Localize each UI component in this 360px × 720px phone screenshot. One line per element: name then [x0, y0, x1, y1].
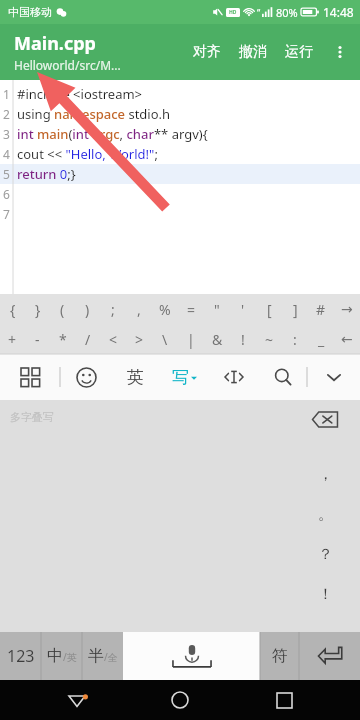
button[interactable]: More options: [322, 34, 358, 70]
button[interactable]: (: [50, 294, 75, 324]
button[interactable]: =: [178, 294, 204, 324]
staticText: 英: [127, 367, 144, 388]
button[interactable]: Recent apps: [257, 680, 311, 720]
staticText: 多字叠写: [10, 410, 54, 424]
button[interactable]: ，: [308, 454, 342, 494]
button[interactable]: ": [204, 294, 230, 324]
staticText: cout << "Hello, World!";: [17, 145, 158, 163]
staticText: 123: [7, 645, 35, 667]
button[interactable]: 符: [261, 632, 299, 680]
button[interactable]: 英: [111, 354, 160, 400]
button[interactable]: Home: [153, 680, 207, 720]
button[interactable]: Hide keyboard: [308, 354, 360, 400]
button[interactable]: Move cursor: [209, 354, 258, 400]
button[interactable]: _: [308, 324, 334, 354]
staticText: return 0;}: [17, 165, 76, 183]
button[interactable]: >: [126, 324, 152, 354]
staticText: 撤消: [239, 43, 267, 61]
staticText: &: [212, 330, 223, 349]
staticText: 7: [3, 206, 10, 222]
button[interactable]: 写: [160, 354, 209, 400]
staticText: #: [316, 300, 326, 319]
button[interactable]: |: [178, 324, 204, 354]
staticText: 5: [3, 166, 10, 182]
button[interactable]: /: [75, 324, 100, 354]
staticText: 半/全: [88, 646, 118, 666]
staticText: 2: [3, 106, 10, 122]
button[interactable]: 。: [308, 494, 342, 534]
staticText: using namespace stdio.h: [17, 105, 171, 123]
button[interactable]: 中/英: [42, 632, 82, 680]
staticText: ": [214, 300, 220, 319]
button[interactable]: %: [152, 294, 178, 324]
staticText: +: [8, 330, 17, 349]
button[interactable]: ？: [308, 534, 342, 574]
staticText: ←: [341, 331, 353, 347]
button[interactable]: 半/全: [83, 632, 123, 680]
staticText: #include <iostream>: [17, 85, 143, 103]
staticText: 中国移动: [8, 5, 52, 19]
staticText: 。: [318, 505, 333, 524]
button[interactable]: Keyboard menu: [0, 354, 60, 400]
button[interactable]: <: [100, 324, 126, 354]
staticText: ？: [318, 545, 333, 564]
button[interactable]: ~: [256, 324, 282, 354]
button[interactable]: \: [152, 324, 178, 354]
staticText: 1: [3, 86, 10, 102]
staticText: <: [109, 330, 118, 349]
button[interactable]: !: [230, 324, 256, 354]
button[interactable]: ]: [282, 294, 308, 324]
staticText: *: [59, 330, 67, 349]
button[interactable]: [: [256, 294, 282, 324]
staticText: ,: [137, 300, 141, 319]
button[interactable]: -: [25, 324, 50, 354]
button[interactable]: ': [230, 294, 256, 324]
staticText: /: [85, 330, 91, 349]
staticText: Helloworld/src/M...: [14, 57, 121, 73]
staticText: }: [35, 300, 41, 319]
staticText: ~: [265, 330, 274, 349]
button[interactable]: 123: [0, 632, 41, 680]
button[interactable]: Back: [50, 680, 104, 720]
button[interactable]: 撤消: [230, 35, 276, 69]
button[interactable]: Emoji: [61, 354, 111, 400]
button[interactable]: Backspace: [308, 406, 342, 432]
button[interactable]: *: [50, 324, 75, 354]
staticText: |: [187, 330, 195, 349]
button[interactable]: +: [0, 324, 25, 354]
staticText: ': [241, 300, 245, 319]
button[interactable]: Enter: [300, 632, 360, 680]
staticText: {: [10, 300, 16, 319]
button[interactable]: ;: [100, 294, 126, 324]
button[interactable]: Search: [258, 354, 307, 400]
staticText: =: [187, 300, 196, 319]
staticText: →: [341, 301, 353, 317]
button[interactable]: 运行: [276, 35, 322, 69]
staticText: !: [241, 330, 245, 349]
staticText: 4: [3, 146, 10, 162]
button[interactable]: :: [282, 324, 308, 354]
staticText: \: [162, 330, 168, 349]
button[interactable]: ←: [334, 324, 360, 354]
staticText: 80%: [276, 5, 298, 20]
staticText: ;: [111, 300, 115, 319]
button[interactable]: 多字叠写: [0, 400, 360, 632]
button[interactable]: &: [204, 324, 230, 354]
button[interactable]: ,: [126, 294, 152, 324]
staticText: ]: [293, 300, 298, 319]
staticText: :: [293, 330, 297, 349]
button[interactable]: ！: [308, 574, 342, 614]
staticText: 14:48: [323, 4, 354, 20]
staticText: >: [135, 330, 144, 349]
button[interactable]: }: [25, 294, 50, 324]
staticText: Main.cpp: [14, 31, 96, 56]
button[interactable]: #: [308, 294, 334, 324]
staticText: ，: [318, 465, 333, 484]
button[interactable]: 对齐: [184, 35, 230, 69]
staticText: [: [267, 300, 272, 319]
button[interactable]: {: [0, 294, 25, 324]
button[interactable]: Space, voice input: [123, 632, 260, 680]
button[interactable]: →: [334, 294, 360, 324]
staticText: HD: [229, 9, 237, 16]
button[interactable]: ): [75, 294, 100, 324]
